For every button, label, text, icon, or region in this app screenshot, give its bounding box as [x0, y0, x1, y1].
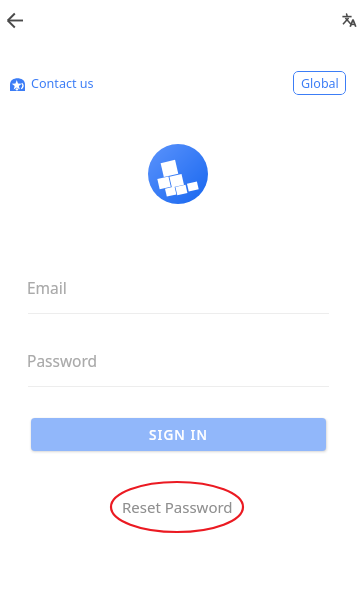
- button[interactable]: Back: [0, 4, 32, 36]
- staticText: Contact us: [31, 75, 94, 92]
- button[interactable]: Reset Password: [109, 480, 245, 534]
- staticText: Password: [27, 350, 98, 371]
- staticText: Reset Password: [122, 497, 233, 517]
- button[interactable]: Contact us: [8, 73, 96, 94]
- button[interactable]: [28, 261, 329, 313]
- staticText: SIGN IN: [149, 426, 208, 444]
- button[interactable]: Global: [293, 71, 346, 95]
- button[interactable]: Change language: [334, 5, 361, 32]
- button[interactable]: [28, 334, 329, 386]
- button[interactable]: SIGN IN: [31, 418, 326, 451]
- staticText: Global: [301, 75, 339, 92]
- staticText: Email: [27, 277, 67, 298]
